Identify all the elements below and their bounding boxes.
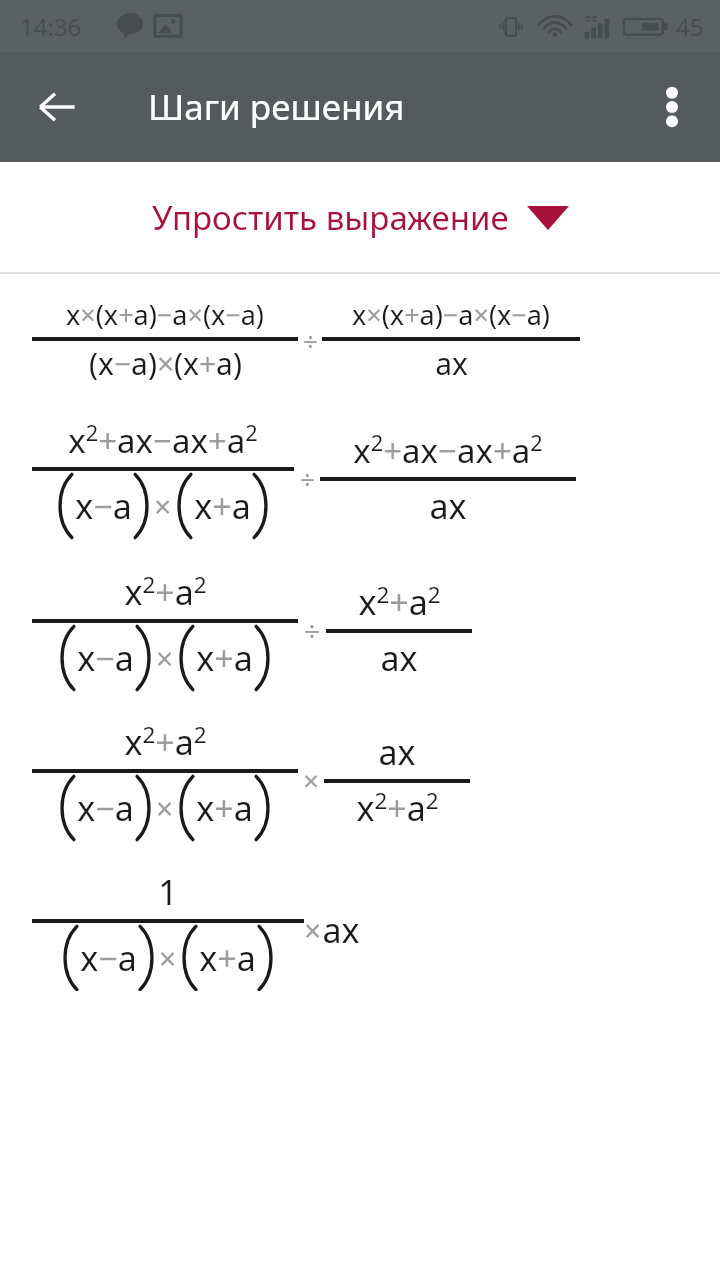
button[interactable]: Упростить выражение bbox=[152, 195, 569, 240]
staticText: x−a bbox=[77, 785, 134, 831]
staticText: x2+a2 bbox=[124, 569, 207, 615]
staticText: 14:36 bbox=[20, 10, 82, 43]
staticText: × bbox=[156, 638, 174, 679]
staticText: x+a bbox=[194, 483, 251, 529]
staticText: 1 bbox=[158, 869, 178, 915]
staticText: x2+ax−ax+a2 bbox=[353, 428, 543, 473]
button[interactable]: 1 bbox=[32, 869, 720, 991]
staticText: x2+ax−ax+a2 bbox=[68, 418, 258, 463]
staticText: ax bbox=[322, 907, 360, 953]
button[interactable]: x×(x+a)−a×(x−a) bbox=[32, 296, 720, 384]
staticText: x−a bbox=[80, 935, 137, 981]
button[interactable]: Back bbox=[21, 71, 93, 143]
staticText: × bbox=[303, 761, 320, 799]
staticText: ax bbox=[380, 635, 418, 681]
staticText: ÷ bbox=[300, 461, 315, 496]
staticText: x2+a2 bbox=[358, 579, 441, 625]
staticText: Шаги решения bbox=[148, 83, 405, 131]
staticText: ax bbox=[429, 483, 467, 529]
staticText: 45 bbox=[676, 10, 704, 43]
staticText: x2+a2 bbox=[124, 719, 207, 765]
staticText: x+a bbox=[196, 785, 253, 831]
staticText: × bbox=[156, 788, 174, 829]
button[interactable]: More options bbox=[636, 71, 708, 143]
staticText: ÷ bbox=[303, 323, 318, 358]
staticText: (x−a)×(x+a) bbox=[89, 343, 242, 384]
staticText: x2+a2 bbox=[356, 785, 439, 831]
staticText: x×(x+a)−a×(x−a) bbox=[66, 296, 264, 333]
staticText: Упростить выражение bbox=[152, 195, 509, 240]
staticText: x×(x+a)−a×(x−a) bbox=[352, 296, 550, 333]
staticText: ÷ bbox=[304, 611, 321, 649]
button[interactable]: x2+a2 bbox=[32, 719, 720, 841]
staticText: ax bbox=[435, 343, 468, 384]
button[interactable]: x2+ax−ax+a2 bbox=[32, 418, 720, 539]
staticText: x+a bbox=[199, 935, 256, 981]
staticText: x−a bbox=[75, 483, 132, 529]
staticText: × bbox=[159, 938, 177, 979]
button[interactable]: x2+a2 bbox=[32, 569, 720, 691]
staticText: × bbox=[304, 910, 322, 951]
staticText: x+a bbox=[196, 635, 253, 681]
staticText: x−a bbox=[77, 635, 134, 681]
staticText: ax bbox=[378, 729, 416, 775]
staticText: × bbox=[154, 486, 172, 527]
